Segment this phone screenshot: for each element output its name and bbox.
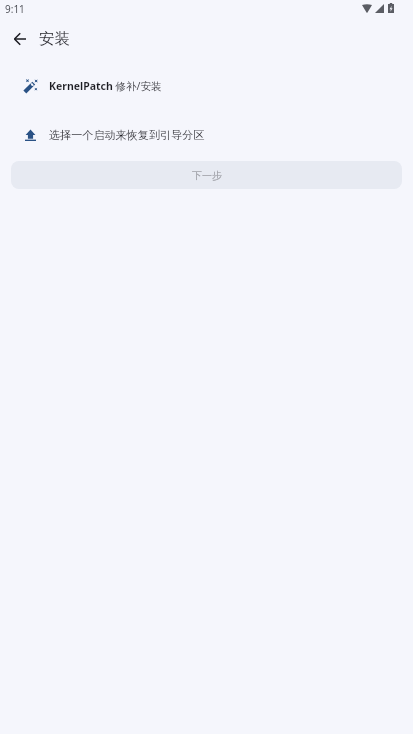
staticText: 选择一个启动来恢复到引导分区 (49, 128, 205, 142)
staticText: 9:11 (5, 2, 25, 16)
staticText: KernelPatch 修补/安装 (49, 79, 162, 93)
button[interactable]: Back (5, 24, 35, 54)
button[interactable]: 选择一个启动来恢复到引导分区 (0, 110, 413, 159)
button[interactable]: KernelPatch 修补/安装 (0, 61, 413, 110)
staticText: 下一步 (192, 169, 222, 182)
staticText: 安装 (39, 29, 70, 49)
button[interactable]: 下一步 (11, 161, 402, 189)
